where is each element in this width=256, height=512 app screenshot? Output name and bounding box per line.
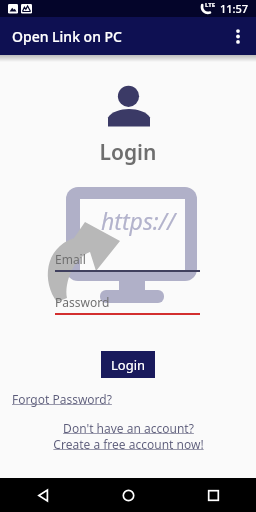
staticText: LTE (205, 1, 216, 9)
button[interactable]: Back (0, 478, 86, 512)
staticText: https:// (101, 205, 176, 236)
staticText: Login (111, 356, 146, 374)
staticText: Login (0, 138, 256, 167)
button[interactable]: Forgot Password? (12, 391, 112, 407)
staticText: 11:57 (220, 1, 249, 16)
staticText: Don't have an account? (63, 420, 194, 436)
button[interactable]: Recents (171, 478, 256, 512)
staticText: Email (55, 251, 86, 267)
staticText: Password (55, 294, 110, 310)
staticText: Open Link on PC (12, 27, 123, 46)
button[interactable]: Login (101, 351, 155, 378)
button[interactable]: Home (86, 478, 171, 512)
staticText: Forgot Password? (12, 391, 112, 407)
button[interactable]: More options (220, 18, 256, 54)
button[interactable]: Don't have an account? (0, 420, 256, 452)
staticText: Create a free account now! (53, 436, 204, 452)
